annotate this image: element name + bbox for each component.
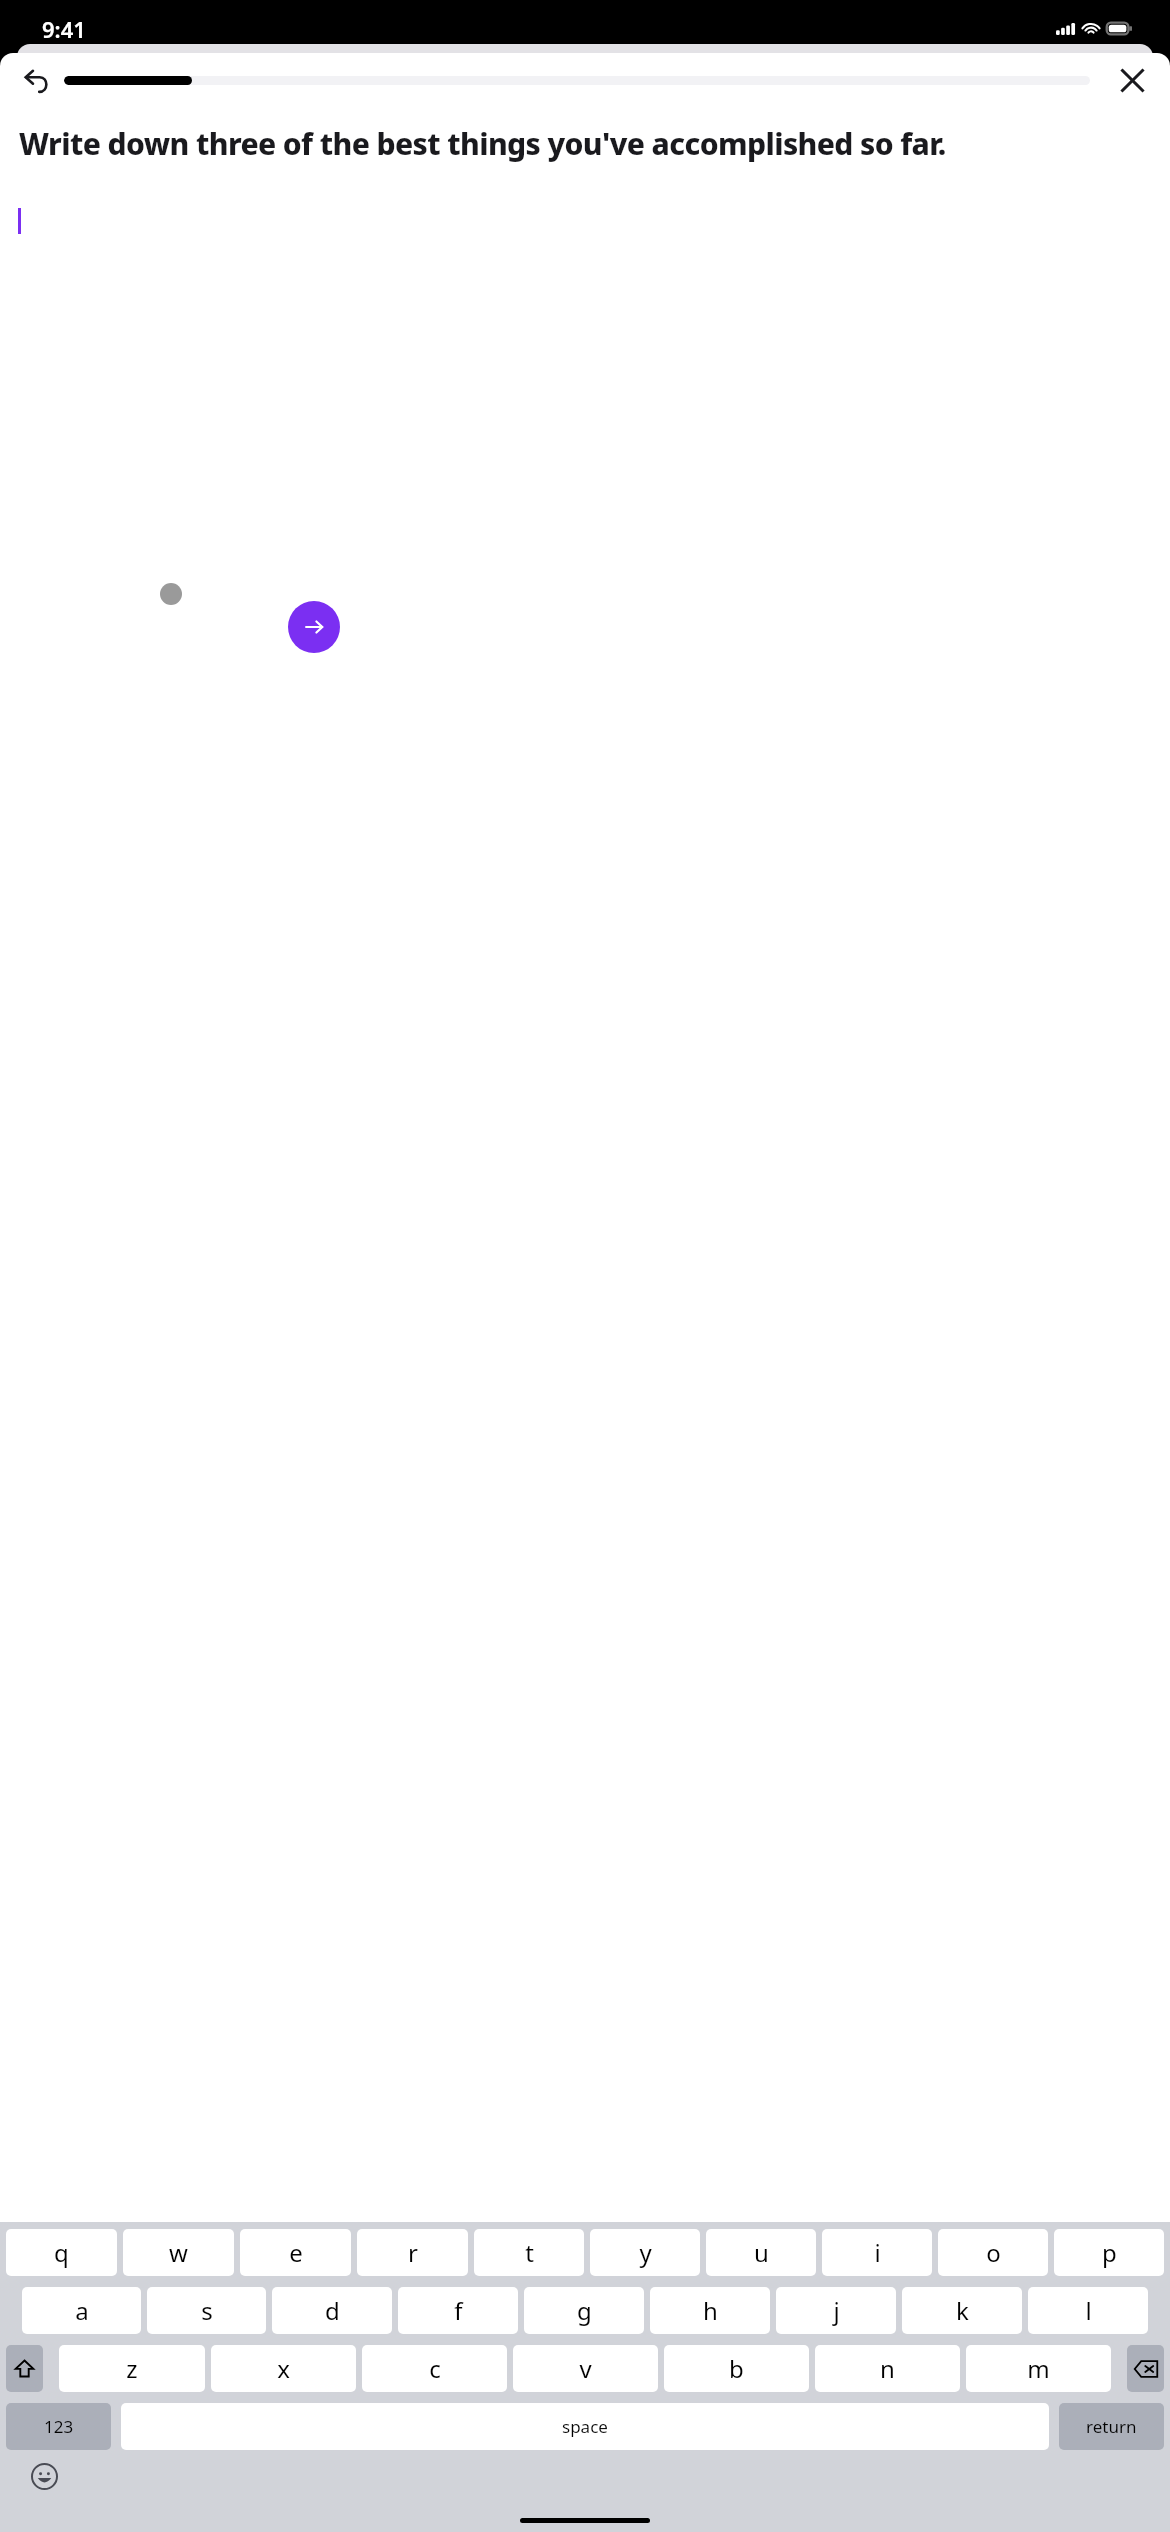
button[interactable]: Close [1108, 56, 1156, 104]
staticText: s [201, 2294, 213, 2327]
staticText: o [986, 2236, 1001, 2269]
staticText: a [75, 2294, 89, 2327]
button[interactable]: Shift [6, 2345, 43, 2392]
button[interactable]: p [1054, 2229, 1164, 2276]
staticText: Write down three of the best things you'… [19, 123, 1154, 164]
button[interactable]: m [966, 2345, 1111, 2392]
staticText: n [880, 2352, 895, 2385]
staticText: p [1102, 2236, 1117, 2269]
button[interactable]: j [776, 2287, 896, 2334]
button[interactable]: s [147, 2287, 266, 2334]
staticText: x [277, 2352, 290, 2385]
staticText: q [54, 2236, 69, 2269]
staticText: d [325, 2294, 340, 2327]
button[interactable]: b [664, 2345, 809, 2392]
button[interactable]: Undo [12, 56, 60, 104]
staticText: v [579, 2352, 592, 2385]
button[interactable]: v [513, 2345, 658, 2392]
button[interactable]: h [650, 2287, 770, 2334]
staticText: t [525, 2236, 534, 2269]
button[interactable]: o [938, 2229, 1048, 2276]
staticText: return [1086, 2415, 1137, 2438]
button[interactable]: y [590, 2229, 700, 2276]
staticText: j [833, 2294, 840, 2327]
staticText: k [956, 2294, 969, 2327]
button[interactable]: Emoji [22, 2454, 66, 2498]
button[interactable]: d [272, 2287, 392, 2334]
staticText: 123 [44, 2415, 74, 2438]
staticText: i [874, 2236, 881, 2269]
button[interactable]: k [902, 2287, 1022, 2334]
button[interactable]: q [6, 2229, 117, 2276]
staticText: c [429, 2352, 441, 2385]
button[interactable]: Next [288, 601, 340, 653]
staticText: r [408, 2236, 418, 2269]
staticText: g [577, 2294, 592, 2327]
button[interactable]: e [240, 2229, 351, 2276]
button[interactable]: u [706, 2229, 816, 2276]
staticText: b [729, 2352, 744, 2385]
staticText: m [1027, 2352, 1050, 2385]
button[interactable]: c [362, 2345, 507, 2392]
button[interactable]: n [815, 2345, 960, 2392]
button[interactable]: f [398, 2287, 518, 2334]
other: Recording indicator [160, 583, 182, 605]
button[interactable]: z [59, 2345, 205, 2392]
staticText: w [169, 2236, 188, 2269]
staticText: l [1085, 2294, 1092, 2327]
button[interactable]: i [822, 2229, 932, 2276]
staticText: space [562, 2415, 608, 2438]
button[interactable]: w [123, 2229, 234, 2276]
button[interactable]: space [121, 2403, 1049, 2450]
staticText: u [754, 2236, 769, 2269]
staticText: z [126, 2352, 138, 2385]
button[interactable]: x [211, 2345, 356, 2392]
button[interactable]: Backspace [1127, 2345, 1164, 2392]
staticText: 9:41 [42, 14, 86, 44]
button[interactable]: r [357, 2229, 468, 2276]
staticText: y [639, 2236, 652, 2269]
button[interactable]: l [1028, 2287, 1148, 2334]
staticText: e [289, 2236, 303, 2269]
button[interactable]: return [1059, 2403, 1164, 2450]
staticText: h [703, 2294, 718, 2327]
staticText: f [454, 2294, 463, 2327]
button[interactable]: g [524, 2287, 644, 2334]
button[interactable]: a [22, 2287, 141, 2334]
button[interactable]: t [474, 2229, 584, 2276]
button[interactable]: 123 [6, 2403, 111, 2450]
